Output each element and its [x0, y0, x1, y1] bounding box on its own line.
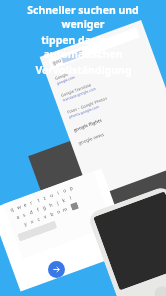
staticText: h — [48, 201, 54, 209]
staticText: v — [43, 213, 48, 221]
staticText: c — [36, 215, 41, 223]
staticText: g — [42, 204, 48, 211]
button[interactable]: h — [46, 200, 55, 210]
button[interactable]: Send — [48, 261, 65, 278]
button[interactable]: j — [52, 198, 62, 207]
staticText: j — [56, 199, 60, 206]
staticText: s — [22, 211, 27, 219]
staticText: e — [22, 201, 28, 209]
staticText: a — [15, 214, 20, 221]
button[interactable]: y — [21, 219, 30, 229]
button[interactable]: g — [39, 202, 49, 212]
button[interactable]: goo — [48, 27, 140, 70]
staticText: Fotos – Google Photos — [66, 96, 108, 115]
staticText: google flights — [72, 117, 103, 133]
staticText: Vervollständigung — [35, 63, 132, 77]
staticText: tippen dank der automatischen — [6, 33, 160, 61]
button[interactable]: x — [27, 216, 37, 226]
staticText: w — [16, 203, 22, 211]
staticText: t — [37, 197, 41, 204]
staticText: Google — [54, 71, 69, 81]
button[interactable]: q — [7, 204, 16, 214]
button[interactable]: v — [41, 211, 50, 221]
button[interactable]: t — [33, 195, 43, 205]
staticText: k — [61, 197, 66, 204]
staticText: google.com — [56, 74, 76, 86]
button[interactable]: w — [14, 202, 23, 212]
button[interactable]: Backspace — [70, 202, 79, 211]
button[interactable]: d — [26, 207, 35, 217]
staticText: b — [49, 210, 56, 218]
staticText: o — [62, 187, 68, 194]
button[interactable]: Home — [152, 284, 166, 296]
staticText: i — [56, 189, 61, 197]
staticText: x — [30, 218, 35, 225]
staticText: goo — [51, 57, 63, 67]
button[interactable]: k — [59, 195, 68, 205]
staticText: photos.google.com — [68, 104, 100, 119]
button[interactable]: p — [66, 183, 76, 193]
staticText: q — [9, 206, 16, 214]
button[interactable]: r — [27, 197, 36, 207]
staticText: p — [69, 184, 75, 192]
button[interactable]: m — [60, 204, 70, 214]
button[interactable]: n — [54, 207, 63, 217]
staticText: l — [69, 194, 73, 202]
staticText: translate.google.com — [62, 86, 96, 103]
button[interactable]: f — [33, 205, 42, 215]
button[interactable]: Space — [17, 220, 57, 242]
staticText: z — [42, 194, 47, 202]
staticText: r — [29, 199, 34, 206]
staticText: u — [49, 191, 55, 199]
button[interactable]: l — [66, 193, 75, 203]
button[interactable]: u — [47, 190, 56, 200]
staticText: d — [28, 208, 35, 216]
staticText: y — [23, 220, 28, 228]
button[interactable]: c — [34, 214, 43, 224]
staticText: f — [36, 206, 40, 214]
button[interactable]: z — [40, 192, 49, 202]
button[interactable]: o — [60, 185, 69, 195]
button[interactable]: s — [20, 209, 29, 219]
staticText: m — [62, 206, 69, 214]
button[interactable]: a — [13, 212, 22, 222]
button[interactable]: e — [20, 200, 30, 210]
staticText: n — [56, 208, 62, 216]
staticText: Schneller suchen und weniger — [6, 3, 160, 31]
staticText: google news — [77, 131, 105, 146]
button[interactable]: b — [47, 209, 56, 219]
staticText: Google Translate — [60, 82, 92, 98]
button[interactable]: i — [53, 188, 62, 198]
